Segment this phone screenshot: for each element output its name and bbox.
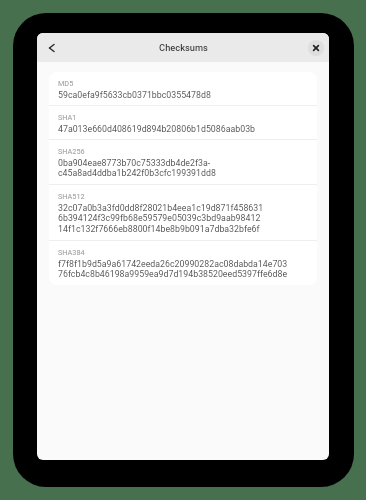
button[interactable]: SHA512	[49, 185, 317, 240]
staticText: SHA384	[58, 248, 85, 257]
button[interactable]: SHA384	[49, 241, 317, 285]
staticText: Checksums	[159, 42, 208, 53]
button[interactable]: Back	[41, 37, 63, 59]
button[interactable]: SHA1	[49, 106, 317, 139]
button[interactable]: MD5	[49, 72, 317, 105]
button[interactable]: Close	[308, 40, 324, 56]
button[interactable]: SHA256	[49, 140, 317, 184]
staticText: 0ba904eae8773b70c75333db4de2f3a- c45a8ad…	[58, 158, 216, 179]
staticText: 59ca0efa9f5633cb0371bbc0355478d8	[58, 90, 211, 100]
staticText: SHA1	[58, 113, 77, 122]
staticText: 32c07a0b3a3fd0dd8f28021b4eea1c19d871f458…	[58, 203, 264, 235]
staticText: MD5	[58, 79, 74, 88]
staticText: SHA256	[58, 147, 85, 156]
staticText: SHA512	[58, 192, 85, 201]
staticText: 47a013e660d408619d894b20806b1d5086aab03b	[58, 124, 256, 134]
staticText: f7f8f1b9d5a9a61742eeda26c20990282ac08dab…	[58, 259, 288, 280]
